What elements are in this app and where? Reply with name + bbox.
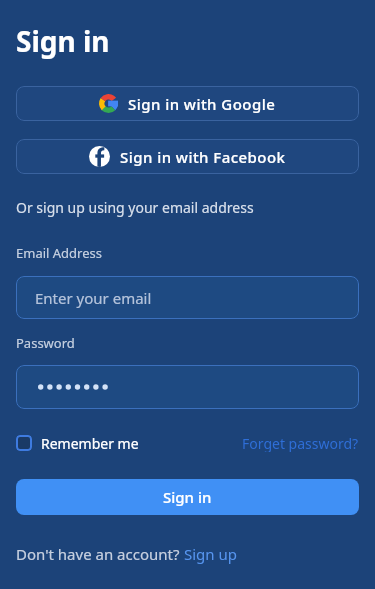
- staticText: Sign in with Google: [128, 94, 276, 114]
- button[interactable]: Sign in with Google: [16, 86, 359, 121]
- staticText: Email Address: [16, 244, 102, 262]
- staticText: Or sign up using your email address: [16, 198, 254, 217]
- staticText: Remember me: [41, 434, 139, 452]
- staticText: Enter your email: [35, 288, 152, 308]
- button[interactable]: Forget password?: [242, 434, 359, 452]
- button[interactable]: Sign in: [16, 479, 359, 515]
- staticText: Sign in with Facebook: [120, 147, 286, 167]
- button[interactable]: [16, 365, 359, 409]
- button[interactable]: Enter your email: [16, 276, 359, 319]
- staticText: Password: [16, 334, 75, 352]
- button[interactable]: Sign up: [184, 544, 237, 564]
- button[interactable]: Remember me: [16, 434, 139, 452]
- staticText: Sign in: [16, 22, 110, 60]
- staticText: Sign in: [163, 487, 212, 507]
- staticText: Forget password?: [242, 434, 359, 452]
- staticText: Sign up: [184, 544, 237, 564]
- staticText: Don't have an account?: [16, 544, 184, 564]
- button[interactable]: Sign in with Facebook: [16, 139, 359, 174]
